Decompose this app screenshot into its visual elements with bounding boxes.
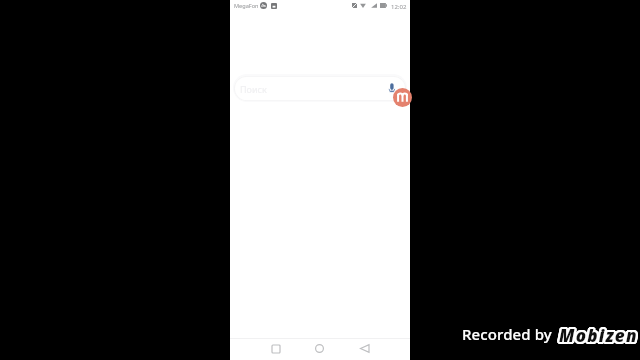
- staticText: Mobizen: [558, 324, 637, 347]
- staticText: Mobizen: [559, 322, 638, 345]
- staticText: Mobizen: [560, 326, 639, 349]
- staticText: Mobizen: [561, 323, 640, 346]
- staticText: Mobizen: [559, 326, 638, 349]
- button[interactable]: Back: [353, 338, 376, 359]
- staticText: Mobizen: [558, 323, 637, 346]
- staticText: Mobizen: [559, 325, 638, 348]
- staticText: Поиск: [240, 83, 267, 95]
- staticText: Mobizen: [558, 325, 637, 348]
- button[interactable]: Recents: [264, 338, 287, 359]
- staticText: Mobizen: [557, 323, 636, 346]
- staticText: Mobizen: [559, 323, 638, 346]
- staticText: Mobizen: [561, 324, 640, 347]
- staticText: Mobizen: [557, 324, 636, 347]
- staticText: Mobizen: [561, 325, 640, 348]
- staticText: Mobizen: [560, 324, 639, 347]
- button[interactable]: Home: [308, 338, 331, 359]
- staticText: Mobizen: [558, 322, 637, 345]
- button[interactable]: Voice search: [385, 80, 397, 96]
- staticText: Mobizen: [559, 324, 638, 347]
- staticText: MegaFon: [234, 2, 259, 10]
- button[interactable]: Mobizen recorder: [393, 88, 412, 107]
- staticText: Mobizen: [560, 325, 639, 348]
- staticText: Recorded by: [462, 324, 552, 344]
- staticText: Mobizen: [559, 324, 638, 347]
- staticText: Mobizen: [557, 325, 636, 348]
- staticText: 12:02: [391, 3, 407, 11]
- button[interactable]: Поиск: [235, 77, 405, 100]
- staticText: Mobizen: [560, 323, 639, 346]
- staticText: Mobizen: [560, 322, 639, 345]
- staticText: Mobizen: [558, 326, 637, 349]
